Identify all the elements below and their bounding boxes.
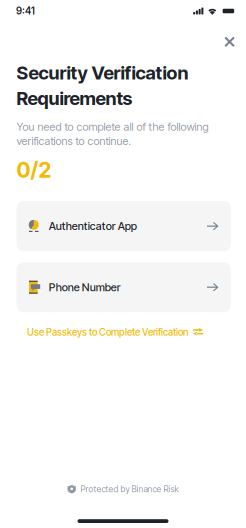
staticText: 0/2 (16, 157, 51, 183)
button[interactable]: Phone Number (16, 262, 231, 312)
staticText: Use Passkeys to Complete Verification (27, 326, 188, 338)
staticText: Security Verification (16, 62, 188, 84)
staticText: Protected by Binance Risk (80, 484, 178, 494)
button[interactable]: Authenticator App (16, 201, 231, 251)
staticText: Authenticator App (49, 219, 137, 233)
staticText: 9:41 (16, 5, 35, 17)
staticText: Phone Number (49, 281, 121, 294)
staticText: verifications to continue. (16, 134, 131, 148)
staticText: You need to complete all of the followin… (16, 120, 208, 133)
button[interactable]: Use Passkeys to Complete Verification (19, 321, 211, 343)
button[interactable]: Close (217, 29, 243, 55)
staticText: Requirements (16, 87, 132, 109)
